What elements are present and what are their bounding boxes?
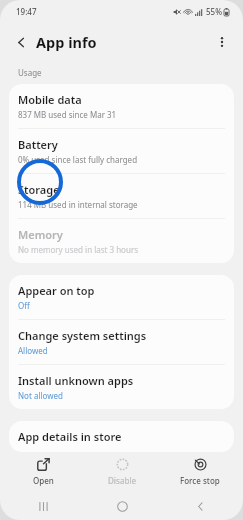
button[interactable]: Open [7,452,79,492]
staticText: Memory [18,227,63,242]
staticText: Allowed [18,345,48,356]
button[interactable]: Install unknown apps [9,365,234,409]
staticText: Mobile data [18,92,82,107]
staticText: Not allowed [18,390,63,401]
staticText: Off [18,300,30,311]
staticText: Force stop [180,475,220,486]
staticText: 837 MB used since Mar 31 [18,109,117,120]
button[interactable]: Home [87,492,157,520]
staticText: Disable [108,475,137,486]
staticText: App details in store [18,429,122,444]
button[interactable]: Back [8,29,34,55]
button[interactable]: Change system settings [9,320,234,364]
button[interactable]: More options [209,29,235,55]
button[interactable]: App details in store [9,421,234,452]
button[interactable]: Battery [9,129,234,173]
staticText: Install unknown apps [18,373,134,388]
staticText: 114 MB used in internal storage [18,199,138,210]
button[interactable]: Back [165,492,235,520]
staticText: Storage [18,182,60,197]
button[interactable]: Storage [9,174,234,218]
button[interactable]: Force stop [164,452,236,492]
staticText: Appear on top [18,283,95,298]
button[interactable]: Disable [86,452,158,492]
staticText: 0% used since last fully charged [18,154,138,165]
button[interactable]: Appear on top [9,275,234,319]
staticText: Open [33,475,54,486]
button[interactable]: Recents [8,492,78,520]
staticText: App info [36,32,97,52]
staticText: 55% [206,6,222,17]
staticText: No memory used in last 3 hours [18,244,139,255]
staticText: Usage [18,67,42,78]
button[interactable]: Mobile data [9,84,234,128]
button[interactable]: Memory [9,219,234,263]
staticText: Battery [18,137,58,152]
staticText: 19:47 [16,6,37,17]
staticText: Change system settings [18,328,147,343]
